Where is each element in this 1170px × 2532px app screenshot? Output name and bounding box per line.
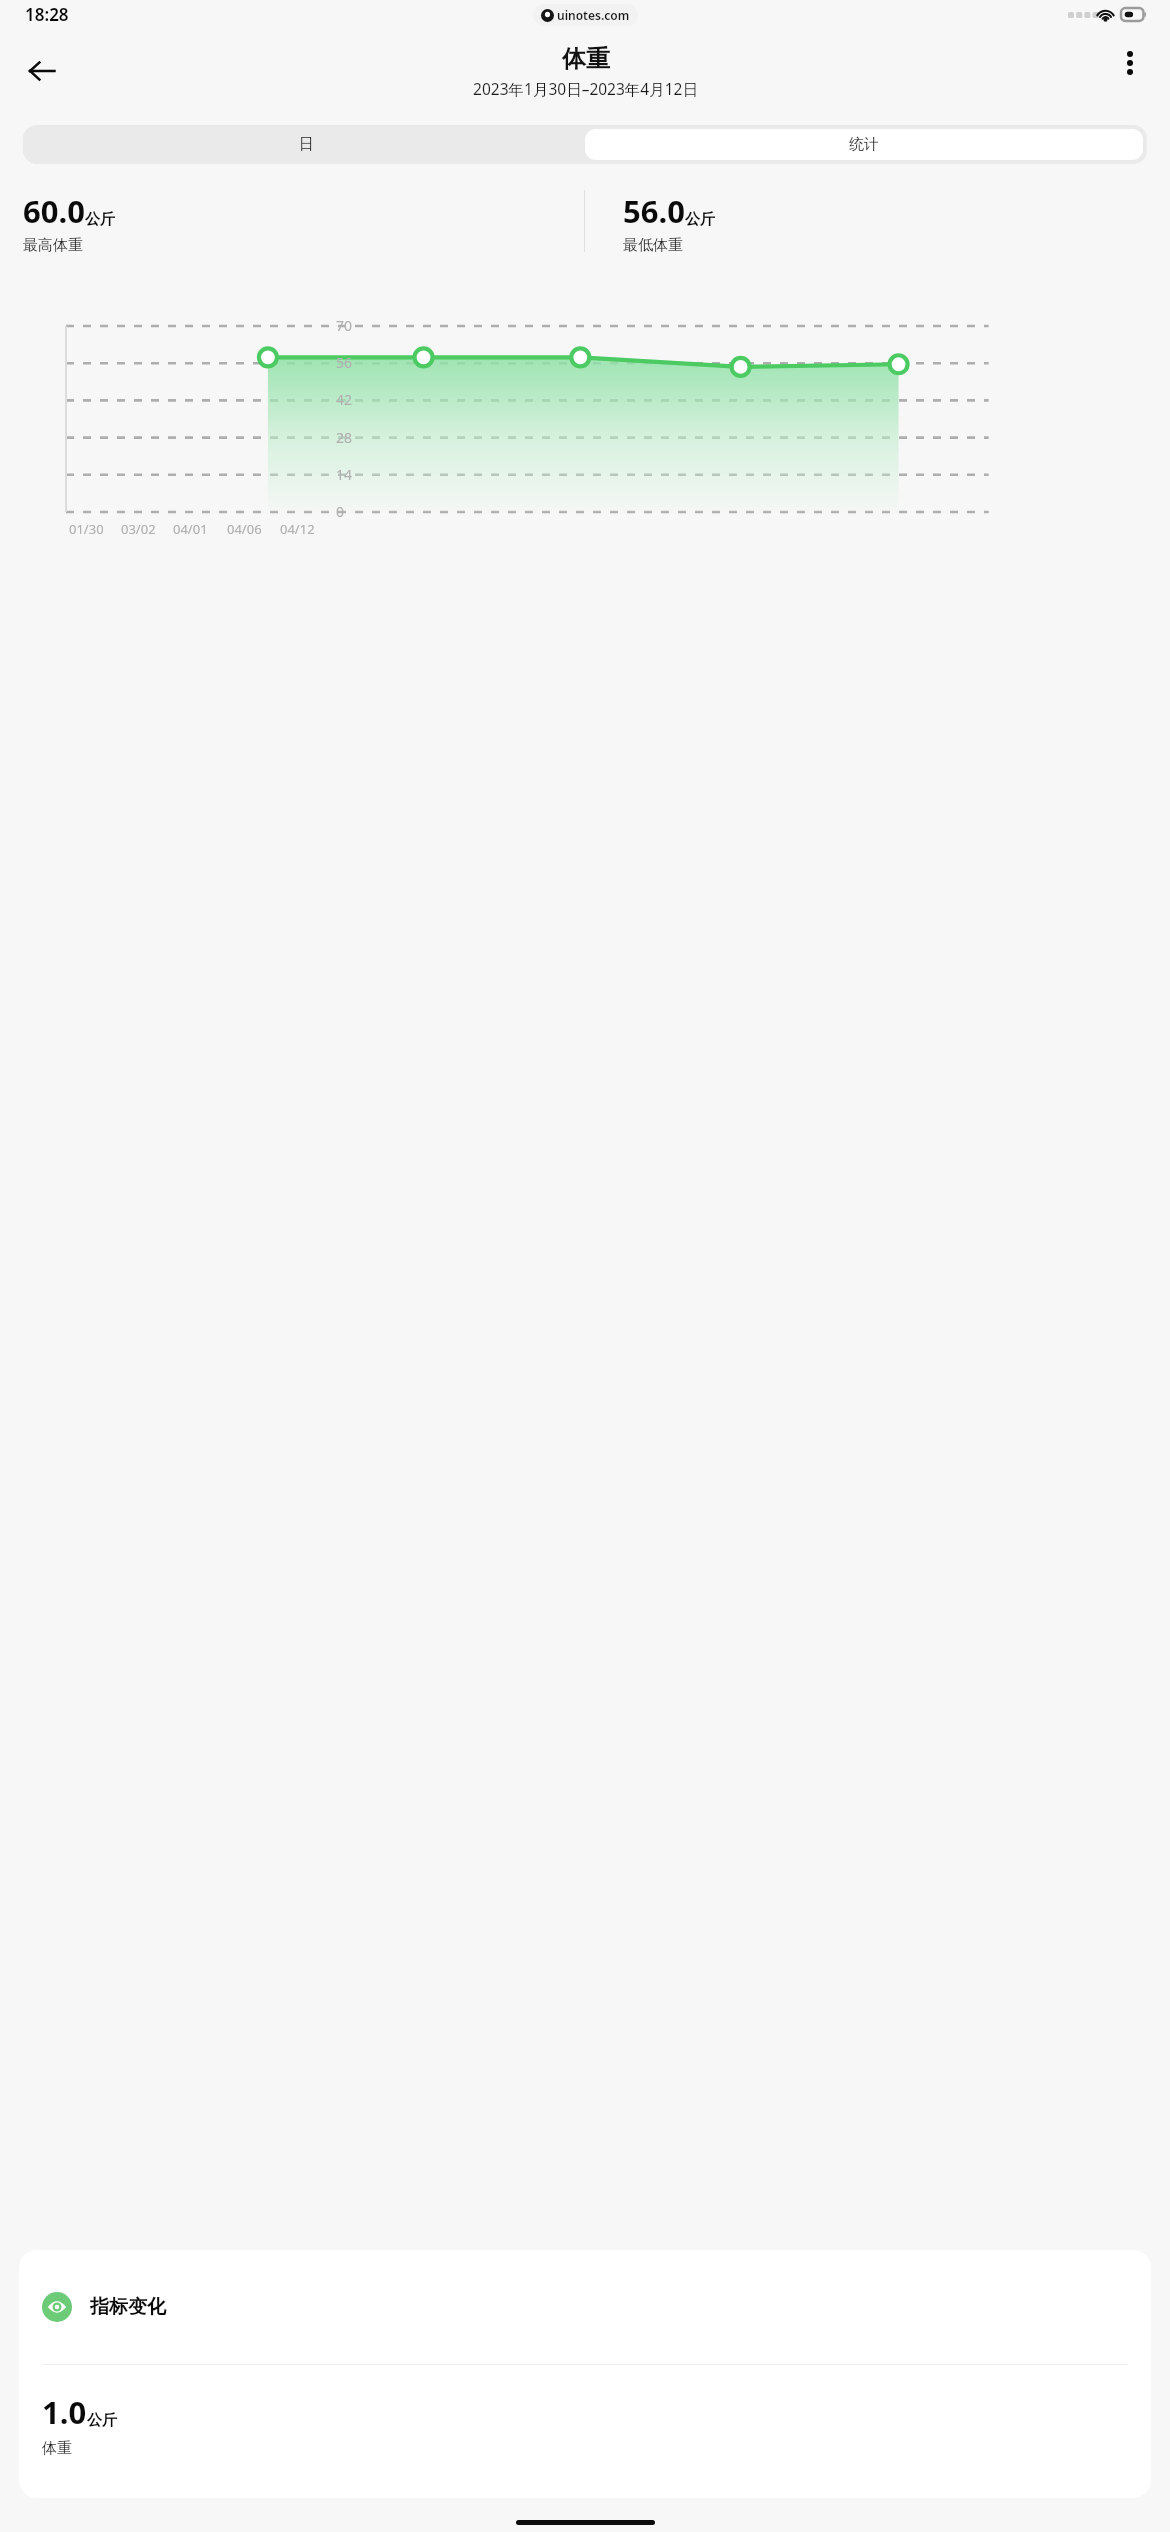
staticText: 指标变化	[90, 2295, 166, 2319]
staticText: 60.0	[23, 190, 85, 232]
staticText: 18:28	[25, 3, 69, 26]
staticText: 公斤	[85, 210, 115, 229]
staticText: 04/06	[227, 520, 262, 538]
button[interactable]: 统计	[585, 129, 1143, 160]
staticText: 56	[336, 353, 353, 372]
staticText: 42	[336, 390, 353, 409]
staticText: 0	[336, 502, 345, 521]
staticText: 最低体重	[623, 236, 683, 252]
staticText: 14	[336, 465, 353, 484]
staticText: 日	[299, 135, 314, 154]
button[interactable]: More options	[1104, 37, 1156, 89]
staticText: 2023年1月30日–2023年4月12日	[473, 78, 698, 99]
staticText: 1.0	[42, 2391, 87, 2433]
staticText: 公斤	[87, 2411, 117, 2430]
staticText: 01/30	[69, 520, 104, 538]
staticText: 04/12	[280, 520, 315, 538]
staticText: 统计	[849, 135, 879, 154]
button[interactable]: Back	[14, 43, 70, 99]
staticText: 56.0	[623, 190, 685, 232]
staticText: 04/01	[173, 520, 208, 538]
staticText: 体重	[42, 2439, 72, 2458]
button[interactable]: 指标变化	[19, 2250, 1151, 2498]
staticText: 70	[336, 316, 353, 335]
staticText: 28	[336, 428, 353, 447]
staticText: 最高体重	[23, 236, 83, 252]
staticText: uinotes.com	[557, 7, 630, 23]
staticText: 03/02	[121, 520, 156, 538]
staticText: 公斤	[685, 210, 715, 229]
staticText: 体重	[562, 44, 610, 74]
button[interactable]: 日	[27, 129, 585, 160]
